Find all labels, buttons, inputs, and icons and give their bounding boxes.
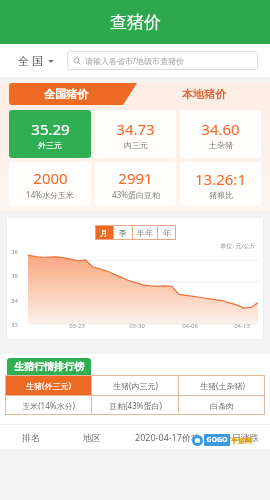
staticText: 13.26:1: [195, 169, 246, 189]
button[interactable]: 白条肉: [179, 396, 265, 415]
staticText: GOGO: [206, 435, 228, 445]
staticText: 内三元: [124, 140, 148, 150]
staticText: 土杂猪: [209, 140, 233, 150]
staticText: 43%蛋白豆粕: [112, 189, 160, 200]
staticText: 外三元: [38, 140, 62, 150]
button[interactable]: 季: [114, 225, 132, 240]
staticText: 33: [11, 321, 18, 329]
staticText: 半年: [137, 228, 153, 238]
staticText: 年: [163, 228, 171, 238]
staticText: 34.60: [201, 119, 240, 139]
staticText: 查猪价: [110, 12, 161, 33]
button[interactable]: 34.73: [95, 110, 176, 158]
button[interactable]: 生猪(外三元): [5, 375, 91, 395]
staticText: 全国猪价: [44, 87, 88, 101]
staticText: 生猪行情排行榜: [14, 360, 84, 373]
button[interactable]: 2000: [9, 162, 91, 206]
staticText: 月: [100, 228, 108, 238]
staticText: 2000: [33, 168, 68, 188]
button[interactable]: 全 国: [18, 53, 55, 68]
staticText: 生猪(土杂猪): [200, 380, 245, 391]
staticText: 35.29: [31, 119, 70, 139]
staticText: 请输入各省市/地级市查猪价: [85, 55, 184, 66]
staticText: 生猪(外三元): [26, 380, 71, 391]
staticText: 白条肉: [210, 401, 234, 411]
staticText: 2991: [118, 168, 153, 188]
button[interactable]: 年: [158, 225, 176, 240]
staticText: 季: [119, 228, 127, 238]
button[interactable]: 35.29: [9, 110, 91, 158]
staticText: 手游网: [231, 436, 252, 445]
button[interactable]: 生猪(内三元): [92, 375, 178, 395]
staticText: 2020-04-17价格: [135, 431, 200, 443]
button[interactable]: 13.26:1: [180, 162, 261, 206]
staticText: 34.73: [116, 119, 155, 139]
staticText: 单位: 元/公斤: [220, 242, 256, 250]
staticText: 03-23: [69, 322, 85, 330]
button[interactable]: [9, 83, 137, 105]
staticText: 玉米(14%水分): [22, 400, 75, 411]
staticText: 03-30: [129, 322, 145, 330]
staticText: 生猪(内三元): [113, 380, 158, 391]
staticText: 36: [11, 248, 18, 256]
staticText: 34: [11, 297, 18, 305]
staticText: 14%水分玉米: [26, 189, 74, 200]
button[interactable]: 半年: [133, 225, 157, 240]
button[interactable]: 豆粕(43%蛋白): [92, 396, 178, 415]
button[interactable]: 请输入各省市/地级市查猪价: [67, 51, 258, 70]
button[interactable]: 月: [95, 225, 113, 240]
staticText: 全 国: [18, 53, 43, 68]
staticText: 35: [11, 272, 18, 280]
button[interactable]: 34.60: [180, 110, 261, 158]
button[interactable]: 2991: [95, 162, 176, 206]
button[interactable]: 本地猪价: [147, 83, 261, 105]
staticText: 地区: [83, 432, 101, 443]
staticText: 今日涨跌: [223, 432, 259, 443]
staticText: 本地猪价: [182, 87, 226, 101]
staticText: 猪粮比: [209, 190, 233, 200]
staticText: 04-13: [234, 322, 250, 330]
button[interactable]: 玉米(14%水分): [5, 396, 91, 415]
staticText: 豆粕(43%蛋白): [109, 400, 162, 411]
button[interactable]: 生猪(土杂猪): [179, 375, 265, 395]
staticText: 排名: [22, 432, 40, 443]
staticText: 04-06: [182, 322, 198, 330]
